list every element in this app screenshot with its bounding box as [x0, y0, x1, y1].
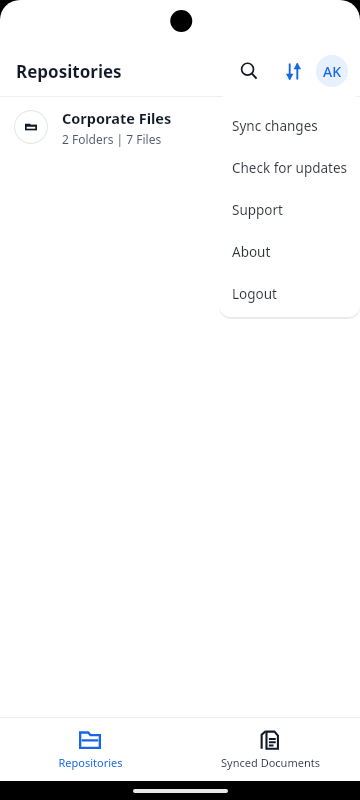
- button[interactable]: Sort: [274, 52, 312, 90]
- button[interactable]: Corporate Files: [0, 97, 360, 157]
- button[interactable]: Logout: [219, 273, 360, 315]
- button[interactable]: Search: [230, 52, 268, 90]
- staticText: Sync changes: [232, 117, 318, 135]
- staticText: 2 Folders | 7 Files: [62, 131, 162, 147]
- button[interactable]: Check for updates: [219, 147, 360, 189]
- staticText: Synced Documents: [221, 755, 320, 770]
- button[interactable]: Repositories: [0, 718, 180, 781]
- button[interactable]: Sync changes: [219, 105, 360, 147]
- button[interactable]: Support: [219, 189, 360, 231]
- button[interactable]: Synced Documents: [180, 718, 360, 781]
- button[interactable]: About: [219, 231, 360, 273]
- staticText: AK: [323, 62, 342, 81]
- staticText: Logout: [232, 285, 277, 303]
- staticText: Support: [232, 201, 283, 219]
- staticText: Check for updates: [232, 159, 348, 177]
- button[interactable]: Account: [316, 55, 348, 87]
- staticText: About: [232, 243, 271, 261]
- staticText: Repositories: [16, 60, 122, 83]
- staticText: Corporate Files: [62, 108, 172, 128]
- staticText: Repositories: [58, 755, 123, 770]
